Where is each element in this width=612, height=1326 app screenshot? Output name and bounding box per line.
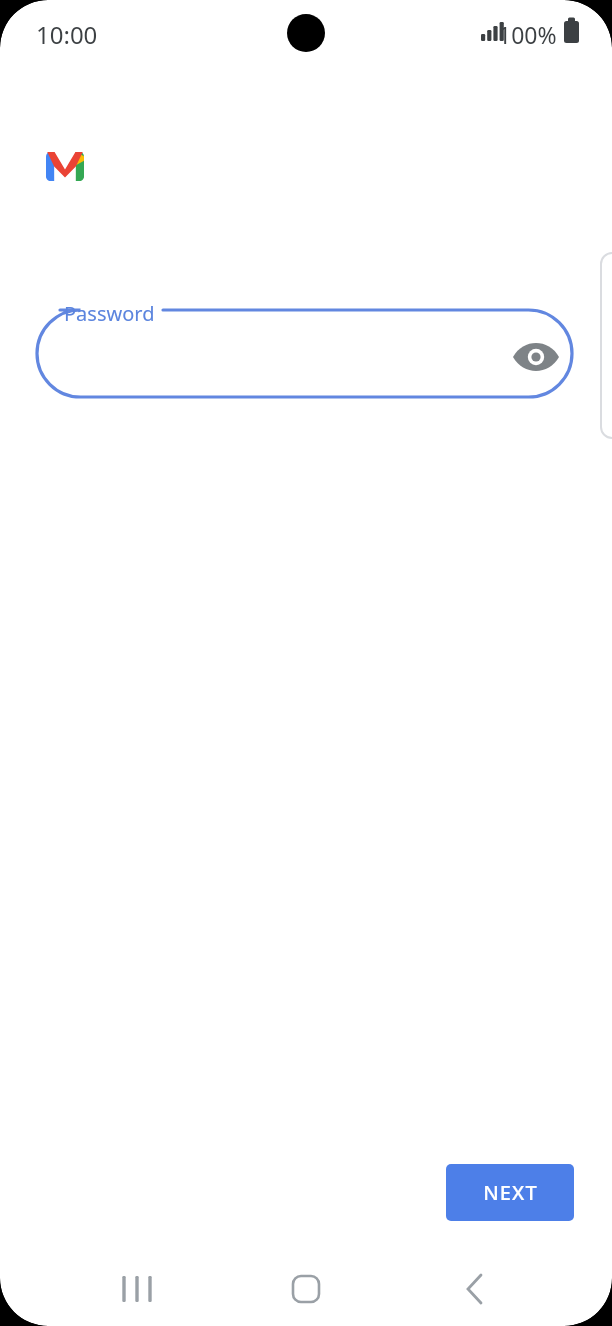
- button[interactable]: NEXT: [446, 1164, 574, 1221]
- button[interactable]: [37, 310, 572, 398]
- staticText: NEXT: [483, 1179, 538, 1206]
- button[interactable]: Back: [443, 1254, 513, 1324]
- button[interactable]: Recent apps: [102, 1254, 172, 1324]
- button[interactable]: Show password: [512, 333, 560, 381]
- staticText: 10:00: [36, 18, 98, 51]
- button[interactable]: Home: [271, 1254, 341, 1324]
- staticText: Password: [64, 300, 155, 327]
- staticText: 100%: [498, 19, 557, 50]
